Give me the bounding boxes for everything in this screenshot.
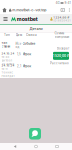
button[interactable]: Recent apps xyxy=(51,143,63,150)
button[interactable]: 1 234,00 ₽ xyxy=(50,14,72,24)
staticText: 4G xyxy=(55,1,59,5)
button[interactable]: 1 520,00 ₽ xyxy=(53,52,69,60)
staticText: 19:11 xyxy=(1,67,7,71)
staticText: 9:41 xyxy=(64,1,70,5)
staticText: m.mostbet-c-vot.top xyxy=(12,8,46,12)
button[interactable]: Home xyxy=(30,143,42,150)
staticText: 24.10.24 xyxy=(1,64,14,67)
staticText: Рассчитано xyxy=(50,61,69,65)
button[interactable]: Open menu xyxy=(0,14,11,24)
staticText: ID 9920431 xyxy=(53,19,70,22)
staticText: Футбол xyxy=(1,59,12,62)
staticText: 1 234,00 ₽ xyxy=(53,16,69,19)
staticText: Игрок xyxy=(22,52,31,56)
staticText: Ставка xyxy=(26,33,37,37)
staticText: Теннис xyxy=(1,71,13,74)
staticText: Дата xyxy=(15,33,22,37)
staticText: Тип xyxy=(4,33,10,37)
staticText: Возврат xyxy=(57,47,69,50)
button[interactable]: mostbet xyxy=(11,14,38,24)
staticText: 24.10.24 xyxy=(1,52,14,55)
staticText: Детали xyxy=(29,26,42,31)
staticText: 2,1 xyxy=(17,64,21,68)
staticText: ставки xyxy=(1,45,10,48)
staticText: Тип xyxy=(1,41,7,45)
button[interactable]: Tabs xyxy=(59,6,66,14)
staticText: 1/2 исход xyxy=(1,62,14,66)
button[interactable]: Chat on WhatsApp xyxy=(29,128,41,139)
staticText: mostbet xyxy=(17,16,38,22)
staticText: Событие xyxy=(22,42,35,45)
staticText: 1,5 xyxy=(17,52,21,56)
button[interactable]: Back xyxy=(9,143,21,150)
button[interactable]: More options xyxy=(66,6,72,14)
staticText: Исход xyxy=(15,42,22,49)
staticText: 1 520,00 ₽ xyxy=(53,54,69,58)
staticText: 2 xyxy=(62,8,64,12)
staticText: Победа 1 xyxy=(1,74,14,78)
staticText: Игрок xyxy=(22,64,31,68)
staticText: 19:40 xyxy=(1,55,9,59)
staticText: Сумма выигрыша xyxy=(54,31,69,38)
button[interactable]: m.mostbet-c-vot.top xyxy=(9,6,46,14)
button[interactable]: Home xyxy=(0,6,9,14)
